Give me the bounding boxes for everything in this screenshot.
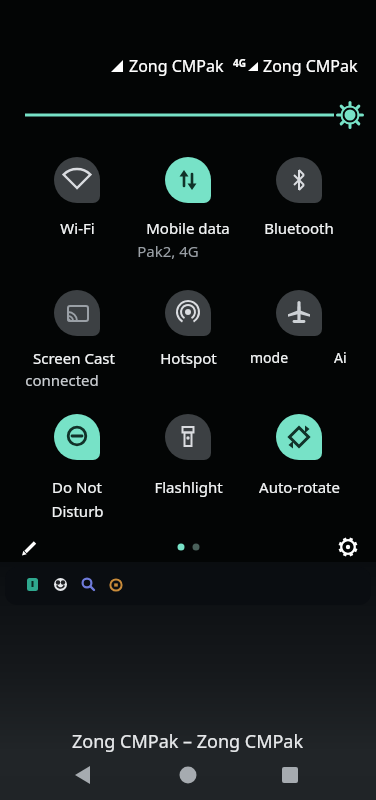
staticText: Auto-rotate <box>259 477 340 497</box>
staticText: Zong CMPak – Zong CMPak <box>72 729 304 754</box>
staticText: Zong CMPak <box>263 55 358 77</box>
staticText: Pak2, 4G <box>137 241 199 261</box>
button[interactable] <box>54 290 100 336</box>
staticText: Ai <box>334 348 347 367</box>
button[interactable] <box>14 531 46 563</box>
button[interactable] <box>276 414 322 460</box>
staticText: Hotspot <box>160 348 217 368</box>
button[interactable] <box>54 157 100 203</box>
button[interactable] <box>68 760 98 790</box>
button[interactable] <box>165 290 211 336</box>
staticText: connected <box>25 370 99 390</box>
staticText: Flashlight <box>154 477 223 497</box>
staticText: Zong CMPak <box>129 55 224 77</box>
staticText: Screen Cast <box>33 348 115 368</box>
staticText: mode <box>250 348 289 367</box>
button[interactable] <box>165 157 211 203</box>
button[interactable] <box>165 414 211 460</box>
button[interactable] <box>5 567 371 605</box>
button[interactable] <box>332 531 364 563</box>
staticText: Wi-Fi <box>60 218 95 238</box>
button[interactable] <box>54 414 100 460</box>
staticText: Disturb <box>51 501 104 521</box>
staticText: Mobile data <box>146 218 230 238</box>
button[interactable] <box>276 290 322 336</box>
staticText: Bluetooth <box>264 218 334 238</box>
button[interactable] <box>275 760 305 790</box>
button[interactable] <box>276 157 322 203</box>
button[interactable] <box>173 760 203 790</box>
staticText: Do Not <box>52 477 102 497</box>
staticText: 4G <box>233 56 246 70</box>
